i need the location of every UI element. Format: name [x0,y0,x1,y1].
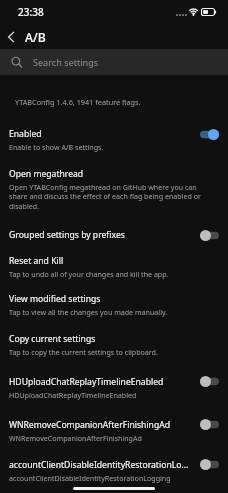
staticText: View modified settings [9,293,101,305]
staticText: Enabled [9,128,42,140]
button[interactable]: WNRemoveCompanionAfterFinishingAd [0,411,228,451]
button[interactable]: HDUploadChatReplayTimelineEnabled [0,368,228,411]
staticText: WNRemoveCompanionAfterFinishingAd [9,433,142,443]
staticText: HDUploadChatReplayTimelineEnabled [9,390,137,400]
button[interactable]: Toggle [199,419,219,430]
button[interactable]: Copy current settings [0,325,228,368]
staticText: YTABConfig 1.4.6, 1941 feature flags. [15,97,141,107]
other: Home [73,487,155,490]
staticText: Reset and Kill [9,255,64,267]
button[interactable]: Open megathread [0,160,228,221]
button[interactable]: Toggle [199,230,219,241]
staticText: HDUploadChatReplayTimelineEnabled [9,376,164,388]
staticText: Enable to show A/B settings. [9,142,104,152]
button[interactable]: Enabled [0,120,228,160]
staticText: Copy current settings [9,333,96,345]
button[interactable]: Search settings [0,49,228,75]
staticText: Search settings [33,56,99,68]
staticText: Tap to undo all of your changes and kill… [9,269,169,279]
button[interactable]: Toggle [199,459,219,470]
button[interactable]: Back [0,24,22,49]
staticText: Grouped settings by prefixes [9,229,125,241]
button[interactable]: Grouped settings by prefixes [0,221,228,247]
staticText: A/B [25,29,46,46]
staticText: WNRemoveCompanionAfterFinishingAd [9,419,170,431]
staticText: Open YTABConfig megathread on GitHub whe… [9,182,204,212]
staticText: accountClientDisableIdentityRestorationL… [9,459,190,471]
button[interactable]: View modified settings [0,285,228,325]
button[interactable]: Toggle [199,376,219,387]
staticText: 23:38 [18,5,44,19]
staticText: Tap to view all the changes you made man… [9,307,168,317]
staticText: Tap to copy the current settings to clip… [9,347,158,357]
staticText: Open megathread [9,168,84,180]
staticText: accountClientDisableIdentityRestorationL… [9,473,171,483]
button[interactable]: accountClientDisableIdentityRestorationL… [0,451,228,491]
button[interactable]: Toggle [199,129,219,140]
button[interactable]: Reset and Kill [0,247,228,285]
